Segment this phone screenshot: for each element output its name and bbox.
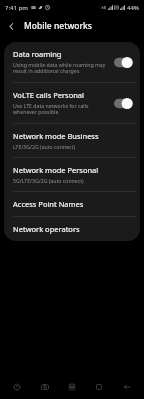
staticText: Use LTE data networks for calls whenever… — [13, 102, 110, 116]
staticText: Data roaming — [13, 49, 62, 59]
staticText: LTE/3G/2G (auto connect) — [13, 143, 75, 150]
staticText: Using mobile data while roaming may resu… — [13, 61, 110, 75]
staticText: 44% — [127, 4, 139, 12]
button[interactable]: Back — [117, 375, 137, 399]
button[interactable]: Toggle — [114, 57, 133, 68]
staticText: 7:41 pm — [5, 4, 28, 12]
button[interactable]: Toggle — [114, 98, 133, 109]
button[interactable]: Access Point Names — [4, 192, 140, 216]
button[interactable]: Camera — [35, 375, 55, 399]
staticText: Mobile networks — [24, 20, 92, 32]
button[interactable]: Back — [0, 15, 22, 37]
staticText: Network mode Personal — [13, 165, 99, 175]
button[interactable]: Network mode Personal — [4, 158, 140, 191]
button[interactable]: Network mode Business — [4, 124, 140, 157]
staticText: Network mode Business — [13, 131, 99, 141]
staticText: Network operators — [13, 224, 80, 234]
button[interactable]: Network operators — [4, 217, 140, 241]
button[interactable]: VoLTE calls Personal — [4, 83, 140, 123]
button[interactable]: Data roaming — [4, 42, 140, 82]
staticText: VoLTE calls Personal — [13, 90, 84, 100]
staticText: 5G/LTE/3G/2G (auto connect) — [13, 177, 84, 184]
button[interactable]: Power — [7, 375, 27, 399]
button[interactable]: Recents — [62, 375, 82, 399]
button[interactable]: Home — [89, 375, 109, 399]
staticText: Access Point Names — [13, 199, 84, 209]
